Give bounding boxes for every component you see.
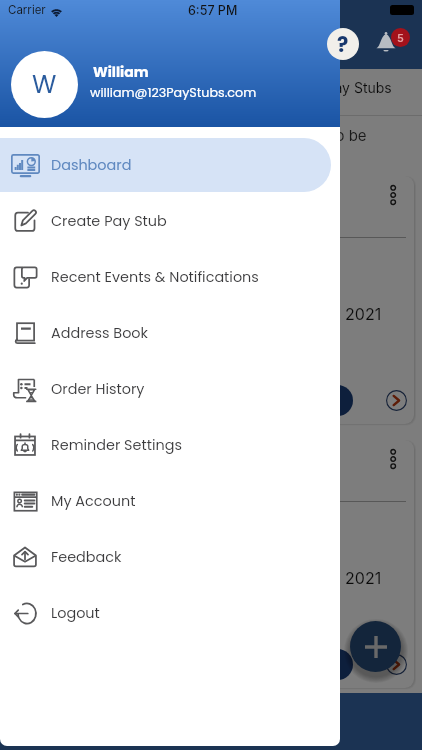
button[interactable]: Logout: [0, 586, 331, 640]
staticText: Pay Period Jan 2021: [227, 304, 382, 323]
button[interactable]: Reminder Settings: [0, 418, 331, 472]
staticText: Address Book: [51, 323, 148, 343]
staticText: My Account: [51, 491, 136, 511]
staticText: Feedback: [51, 547, 122, 567]
button[interactable]: Feedback: [0, 530, 331, 584]
staticText: William: [93, 62, 149, 82]
button[interactable]: Notifications: [374, 30, 398, 54]
staticText: No pay stubs to be: [233, 126, 367, 144]
button[interactable]: Dashboard: [0, 138, 331, 192]
staticText: My Pay Stubs: [301, 79, 392, 96]
staticText: Recent Events & Notifications: [51, 267, 259, 287]
staticText: Create Pay Stub: [51, 211, 167, 231]
button[interactable]: Order History: [0, 362, 331, 416]
staticText: Dashboard: [51, 155, 132, 175]
button[interactable]: [280, 385, 353, 416]
button[interactable]: Add: [350, 621, 401, 672]
button[interactable]: Address Book: [0, 306, 331, 360]
staticText: Carrier: [8, 3, 46, 17]
button[interactable]: Pay Period Jan 2021: [12, 440, 414, 688]
button[interactable]: View details: [386, 390, 407, 411]
button[interactable]: Recent Events & Notifications: [0, 250, 331, 304]
staticText: W: [32, 67, 57, 102]
staticText: Pay Period Jan 2021: [227, 568, 382, 587]
staticText: 6:57 PM: [188, 3, 238, 18]
button[interactable]: Pay Period Jan 2021: [12, 176, 414, 424]
staticText: Logout: [51, 603, 100, 623]
staticText: Reminder Settings: [51, 435, 182, 455]
button[interactable]: My Account: [0, 474, 331, 528]
button[interactable]: View details: [386, 654, 407, 675]
button[interactable]: Help: [327, 28, 359, 60]
staticText: william@123PayStubs.com: [90, 84, 257, 102]
staticText: Order History: [51, 379, 145, 399]
button[interactable]: Create Pay Stub: [0, 194, 331, 248]
button[interactable]: [280, 649, 353, 680]
staticText: ?: [337, 30, 349, 59]
staticText: 5: [397, 31, 404, 44]
